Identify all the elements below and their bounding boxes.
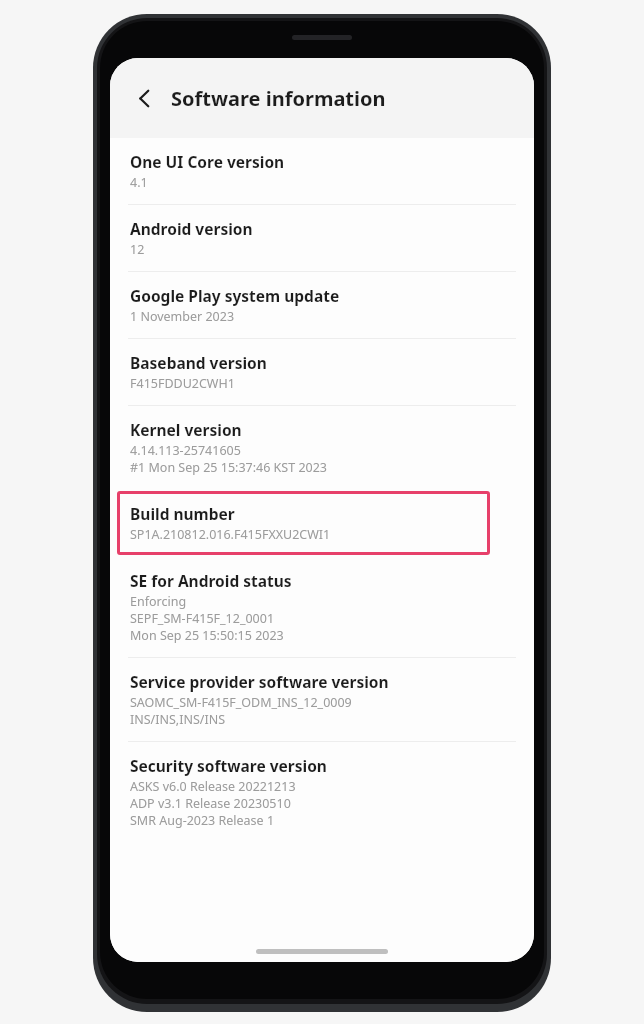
button[interactable]: Back	[123, 77, 165, 119]
staticText: SMR Aug-2023 Release 1	[130, 812, 275, 829]
button[interactable]: Baseband version	[110, 339, 534, 405]
button[interactable]: Android version	[110, 205, 534, 271]
button[interactable]: Kernel version	[110, 406, 534, 489]
staticText: ADP v3.1 Release 20230510	[130, 795, 291, 812]
button[interactable]: Build number	[117, 491, 490, 555]
button[interactable]: Build number	[117, 491, 490, 555]
staticText: SP1A.210812.016.F415FXXU2CWI1	[130, 526, 331, 543]
staticText: Google Play system update	[130, 285, 340, 306]
button[interactable]: Service provider software version	[110, 658, 534, 741]
staticText: 1 November 2023	[130, 308, 235, 325]
staticText: Mon Sep 25 15:50:15 2023	[130, 627, 284, 644]
staticText: Kernel version	[130, 419, 242, 440]
staticText: Software information	[171, 85, 386, 112]
staticText: Build number	[130, 503, 235, 524]
staticText: Security software version	[130, 755, 327, 776]
staticText: ASKS v6.0 Release 20221213	[130, 778, 296, 795]
button[interactable]: Google Play system update	[110, 272, 534, 338]
staticText: F415FDDU2CWH1	[130, 375, 235, 392]
staticText: SE for Android status	[130, 570, 292, 591]
staticText: #1 Mon Sep 25 15:37:46 KST 2023	[130, 459, 328, 476]
button[interactable]: One UI Core version	[110, 138, 534, 204]
staticText: Baseband version	[130, 352, 267, 373]
staticText: Enforcing	[130, 593, 187, 610]
staticText: Service provider software version	[130, 671, 389, 692]
staticText: 4.1	[130, 174, 148, 191]
staticText: INS/INS,INS/INS	[130, 711, 226, 728]
staticText: Android version	[130, 218, 253, 239]
staticText: 4.14.113-25741605	[130, 442, 241, 459]
staticText: 12	[130, 241, 145, 258]
staticText: SAOMC_SM-F415F_ODM_INS_12_0009	[130, 694, 352, 711]
button[interactable]: Security software version	[110, 742, 534, 842]
staticText: SEPF_SM-F415F_12_0001	[130, 610, 275, 627]
button[interactable]: SE for Android status	[110, 557, 534, 657]
staticText: One UI Core version	[130, 151, 285, 172]
